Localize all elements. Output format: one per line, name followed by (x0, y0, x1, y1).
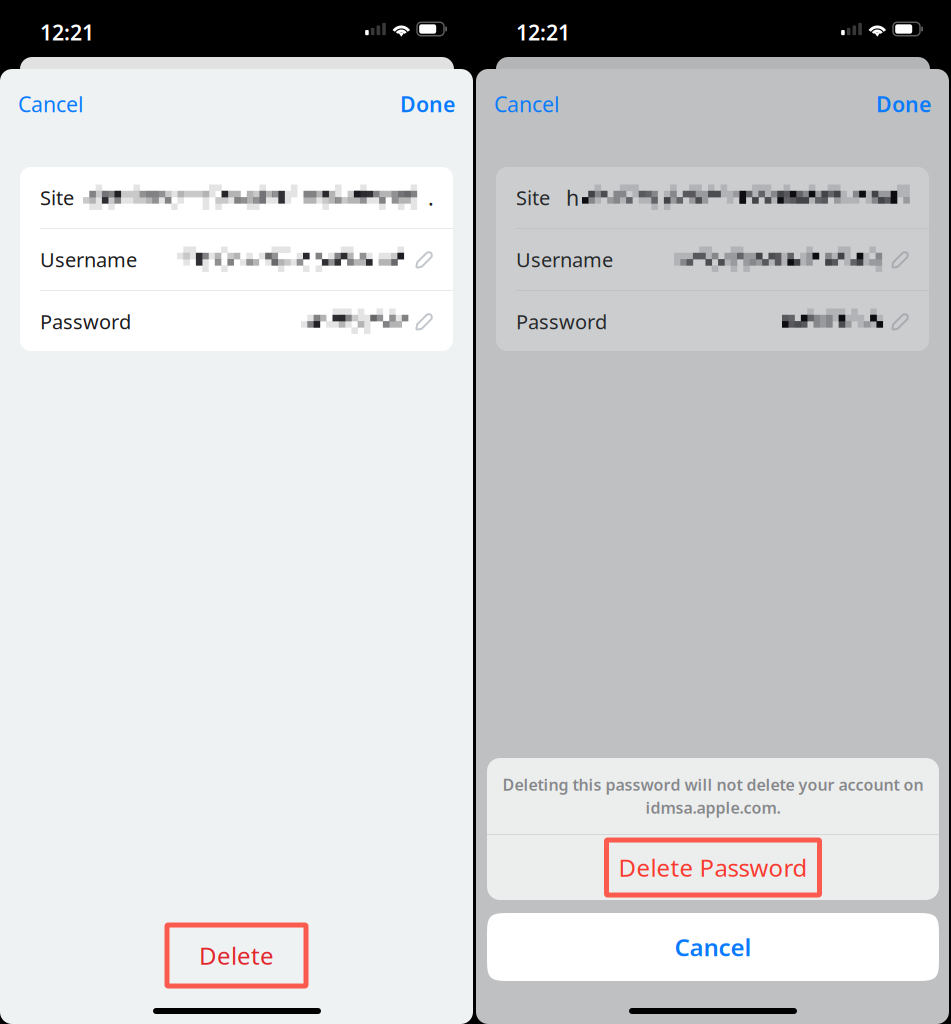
staticText: Cancel (18, 90, 84, 118)
button[interactable]: Password (20, 291, 405, 352)
button[interactable]: Done (325, 89, 455, 119)
staticText: idmsa.apple.com. (645, 797, 780, 818)
staticText: Done (400, 90, 455, 118)
button[interactable]: Cancel (494, 89, 624, 119)
button[interactable]: Cancel (487, 913, 939, 981)
staticText: Cancel (674, 931, 751, 963)
staticText: Password (516, 308, 607, 335)
button[interactable]: Done (801, 89, 931, 119)
staticText: Deleting this password will not delete y… (502, 774, 923, 795)
button[interactable]: Site (496, 167, 929, 228)
staticText: 12:21 (516, 18, 570, 46)
staticText: Password (40, 308, 131, 335)
button[interactable]: Edit Password (405, 291, 453, 352)
staticText: Done (876, 90, 931, 118)
staticText: Username (40, 246, 137, 273)
staticText: Username (516, 246, 613, 273)
staticText: Site (40, 184, 74, 211)
button[interactable]: Edit Password (881, 291, 929, 352)
staticText: Delete Password (618, 852, 807, 883)
button[interactable]: Password (496, 291, 881, 352)
staticText: 12:21 (40, 18, 94, 46)
staticText: Cancel (494, 90, 560, 118)
button[interactable]: Edit Username (405, 229, 453, 290)
button[interactable]: Delete Password (487, 835, 939, 900)
button[interactable]: Username (496, 229, 881, 290)
button[interactable]: Edit Username (881, 229, 929, 290)
button[interactable]: Site (20, 167, 453, 228)
staticText: Site (516, 184, 550, 211)
staticText: . (428, 183, 434, 212)
staticText: h (566, 183, 579, 212)
button[interactable]: Cancel (18, 89, 148, 119)
button[interactable]: Username (20, 229, 405, 290)
button[interactable]: Delete (167, 925, 306, 986)
staticText: Delete (199, 940, 274, 971)
